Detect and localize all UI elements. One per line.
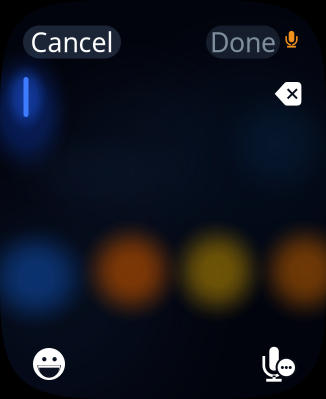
button[interactable]: Dictate xyxy=(284,29,298,49)
button[interactable]: Done xyxy=(206,25,280,58)
button[interactable]: Dictation xyxy=(259,345,293,383)
staticText: Cancel xyxy=(30,24,113,60)
button[interactable]: Emoji xyxy=(33,348,65,380)
staticText: Done xyxy=(210,24,276,60)
button[interactable]: Delete xyxy=(274,82,302,106)
button[interactable]: Cancel xyxy=(23,25,121,58)
